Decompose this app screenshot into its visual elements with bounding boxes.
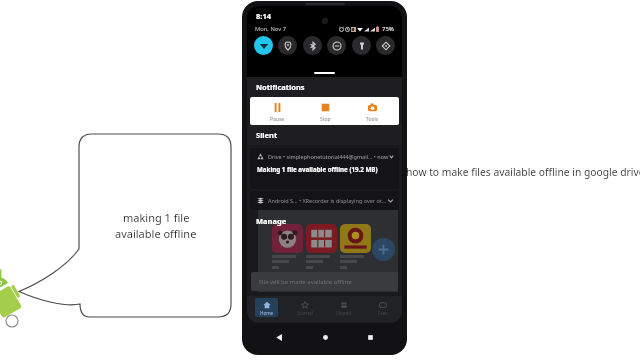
button[interactable]: Files [363, 296, 402, 323]
staticText: Making 1 file available offline (19.2 MB… [257, 165, 378, 173]
staticText: Silent [256, 130, 278, 140]
staticText: Mon, Nov 7 [255, 25, 286, 33]
staticText: Drive • simplephonetutorial444@gmail... … [268, 153, 389, 160]
staticText: 8:14 [256, 11, 271, 21]
button[interactable]: Android S... • XRecorder is displaying o… [250, 191, 399, 210]
button[interactable]: Bluetooth [303, 36, 322, 55]
button[interactable]: Flashlight [352, 36, 371, 55]
button[interactable]: Auto rotate [376, 36, 395, 55]
button[interactable]: New [372, 238, 395, 261]
staticText: Android S... • XRecorder is displaying o… [268, 197, 387, 204]
staticText: making 1 file [123, 210, 190, 225]
button[interactable]: Stop [304, 97, 346, 125]
staticText: Pause [270, 116, 285, 123]
staticText: how to make files available offline in g… [406, 165, 640, 179]
staticText: Tools [366, 116, 379, 123]
button[interactable]: Tools [351, 97, 393, 125]
button[interactable]: Recents [362, 329, 378, 345]
staticText: Files [378, 310, 388, 316]
button[interactable]: Pause [256, 97, 298, 125]
staticText: 75% [382, 25, 394, 33]
staticText: Home [260, 310, 274, 316]
staticText: Notifications [256, 82, 305, 92]
button[interactable]: Home [317, 329, 333, 345]
button[interactable]: mcd [340, 224, 371, 253]
button[interactable]: Back [271, 329, 287, 345]
staticText: available offline [115, 226, 197, 241]
staticText: Manage [256, 216, 287, 226]
button[interactable]: uniqlo [306, 224, 337, 253]
button[interactable]: Home [247, 296, 285, 323]
button[interactable]: Wi-Fi [254, 36, 273, 55]
button[interactable]: panda [272, 224, 303, 253]
button[interactable]: Location [278, 36, 297, 55]
button[interactable]: Starred [285, 296, 324, 323]
button[interactable]: Do not disturb [327, 36, 346, 55]
staticText: File will be made available offline [259, 278, 352, 286]
staticText: Stop [320, 116, 331, 123]
button[interactable]: Drive • simplephonetutorial444@gmail... … [250, 148, 399, 189]
button[interactable]: Shared [324, 296, 363, 323]
staticText: Shared [336, 310, 352, 316]
staticText: Starred [297, 310, 313, 316]
